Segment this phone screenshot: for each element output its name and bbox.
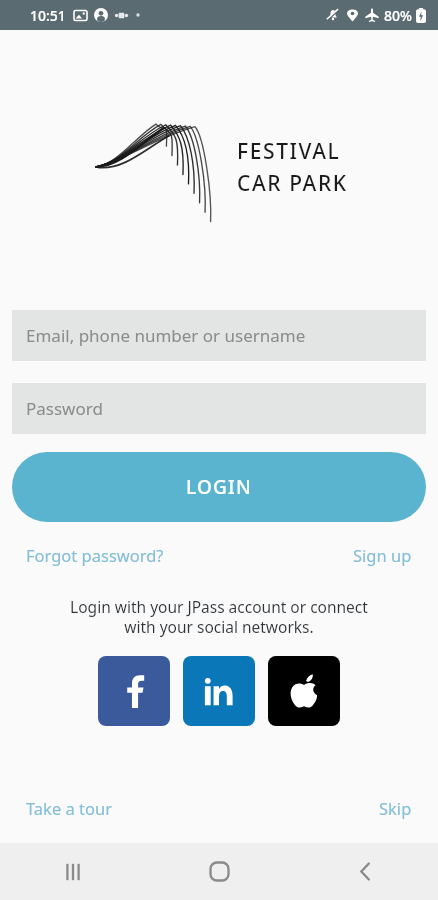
- staticText: CAR PARK: [237, 169, 348, 198]
- staticText: Email, phone number or username: [26, 324, 306, 347]
- button[interactable]: Recent apps: [0, 843, 146, 900]
- staticText: FESTIVAL: [237, 137, 341, 166]
- button[interactable]: Email, phone number or username: [12, 310, 426, 361]
- button[interactable]: Take a tour: [26, 797, 113, 819]
- staticText: Login with your JPass account or connect…: [24, 596, 414, 638]
- staticText: LOGIN: [186, 474, 252, 500]
- staticText: 10:51: [30, 6, 66, 25]
- button[interactable]: Sign in with Facebook: [98, 656, 170, 726]
- button[interactable]: Sign in with LinkedIn: [183, 656, 255, 726]
- button[interactable]: Back: [292, 843, 438, 900]
- button[interactable]: Sign in with Apple: [268, 656, 340, 726]
- staticText: Forgot password?: [26, 544, 164, 566]
- button[interactable]: Home: [146, 843, 292, 900]
- staticText: Take a tour: [26, 797, 113, 819]
- button[interactable]: Password: [12, 383, 426, 434]
- button[interactable]: Sign up: [353, 544, 412, 566]
- button[interactable]: Skip: [379, 797, 412, 819]
- staticText: Skip: [379, 797, 412, 819]
- staticText: Sign up: [353, 544, 412, 566]
- button[interactable]: Forgot password?: [26, 544, 164, 566]
- staticText: Password: [26, 397, 103, 420]
- button[interactable]: LOGIN: [12, 452, 426, 522]
- staticText: 80%: [384, 6, 412, 25]
